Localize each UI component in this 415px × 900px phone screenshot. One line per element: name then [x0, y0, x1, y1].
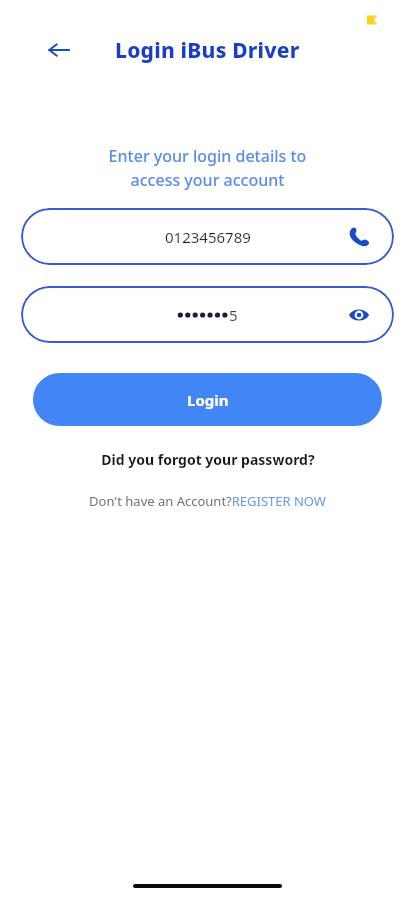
- staticText: Login iBus Driver: [115, 36, 300, 65]
- staticText: 5: [229, 305, 238, 325]
- button[interactable]: Back: [38, 29, 80, 71]
- button[interactable]: 0123456789: [21, 208, 394, 265]
- button[interactable]: Don't have an Account?REGISTER NOW: [40, 492, 375, 510]
- button[interactable]: 5: [21, 286, 394, 343]
- staticText: 0123456789: [165, 227, 251, 247]
- button[interactable]: Call: [342, 220, 376, 254]
- button[interactable]: Did you forgot your password?: [60, 450, 355, 469]
- staticText: Don't have an Account?REGISTER NOW: [89, 492, 326, 510]
- staticText: Login: [187, 390, 229, 410]
- staticText: Enter your login details to access your …: [40, 145, 375, 191]
- staticText: Did you forgot your password?: [101, 450, 315, 469]
- button[interactable]: Show password: [342, 298, 376, 332]
- button[interactable]: Login: [33, 373, 382, 426]
